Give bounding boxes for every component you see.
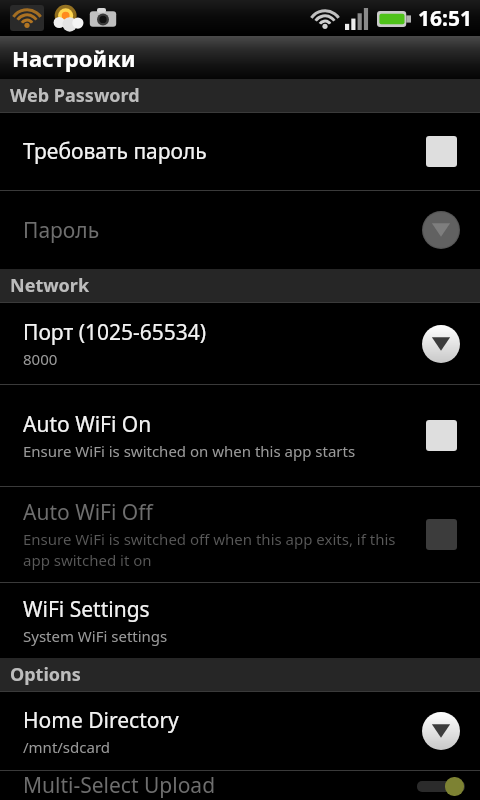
button[interactable]: Порт (1025-65534) xyxy=(0,303,480,384)
button[interactable]: Checkbox xyxy=(426,420,457,451)
staticText: System WiFi settings xyxy=(23,626,168,646)
staticText: Настройки xyxy=(12,43,136,73)
button[interactable]: WiFi Settings xyxy=(0,583,480,658)
button[interactable]: Auto WiFi On xyxy=(0,385,480,486)
staticText: Ensure WiFi is switched off when this ap… xyxy=(23,529,406,571)
staticText: WiFi Settings xyxy=(23,595,150,624)
button[interactable]: Open list xyxy=(422,712,460,750)
button[interactable]: Требовать пароль xyxy=(0,113,480,190)
staticText: Auto WiFi Off xyxy=(23,498,153,527)
button[interactable]: Checkbox xyxy=(426,136,457,167)
staticText: Network xyxy=(10,273,90,298)
staticText: /mnt/sdcard xyxy=(23,737,111,757)
staticText: Порт (1025-65534) xyxy=(23,318,207,347)
staticText: Options xyxy=(10,662,81,687)
button[interactable]: Multi-Select Upload xyxy=(0,771,480,800)
staticText: Требовать пароль xyxy=(23,137,207,166)
staticText: Пароль xyxy=(23,216,100,245)
button[interactable]: Auto WiFi Off xyxy=(0,487,480,582)
button[interactable]: Open list xyxy=(422,325,460,363)
button[interactable]: Пароль xyxy=(0,191,480,269)
button[interactable]: Toggle xyxy=(417,776,465,796)
button[interactable]: Checkbox xyxy=(426,519,457,550)
staticText: Home Directory xyxy=(23,706,179,735)
button[interactable]: Home Directory xyxy=(0,692,480,770)
staticText: Ensure WiFi is switched on when this app… xyxy=(23,441,356,461)
staticText: 16:51 xyxy=(418,4,472,33)
staticText: 8000 xyxy=(23,349,58,369)
staticText: Multi-Select Upload xyxy=(23,771,216,800)
staticText: Web Password xyxy=(10,83,140,108)
staticText: Auto WiFi On xyxy=(23,410,152,439)
button[interactable]: Open list xyxy=(422,211,460,249)
